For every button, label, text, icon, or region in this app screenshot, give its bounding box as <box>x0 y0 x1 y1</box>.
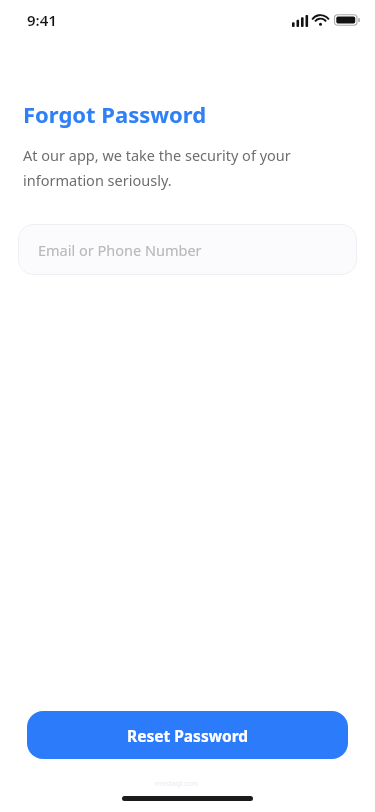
staticText: Email or Phone Number <box>38 240 202 260</box>
staticText: Forgot Password <box>23 99 207 129</box>
staticText: At our app, we take the security of your… <box>23 145 311 190</box>
button[interactable]: Reset Password <box>27 711 348 759</box>
other: Home indicator <box>122 796 253 801</box>
staticText: mostaql.com <box>155 779 198 789</box>
button[interactable]: Email or Phone Number <box>18 224 357 275</box>
staticText: 9:41 <box>27 10 57 30</box>
staticText: Reset Password <box>127 725 249 746</box>
